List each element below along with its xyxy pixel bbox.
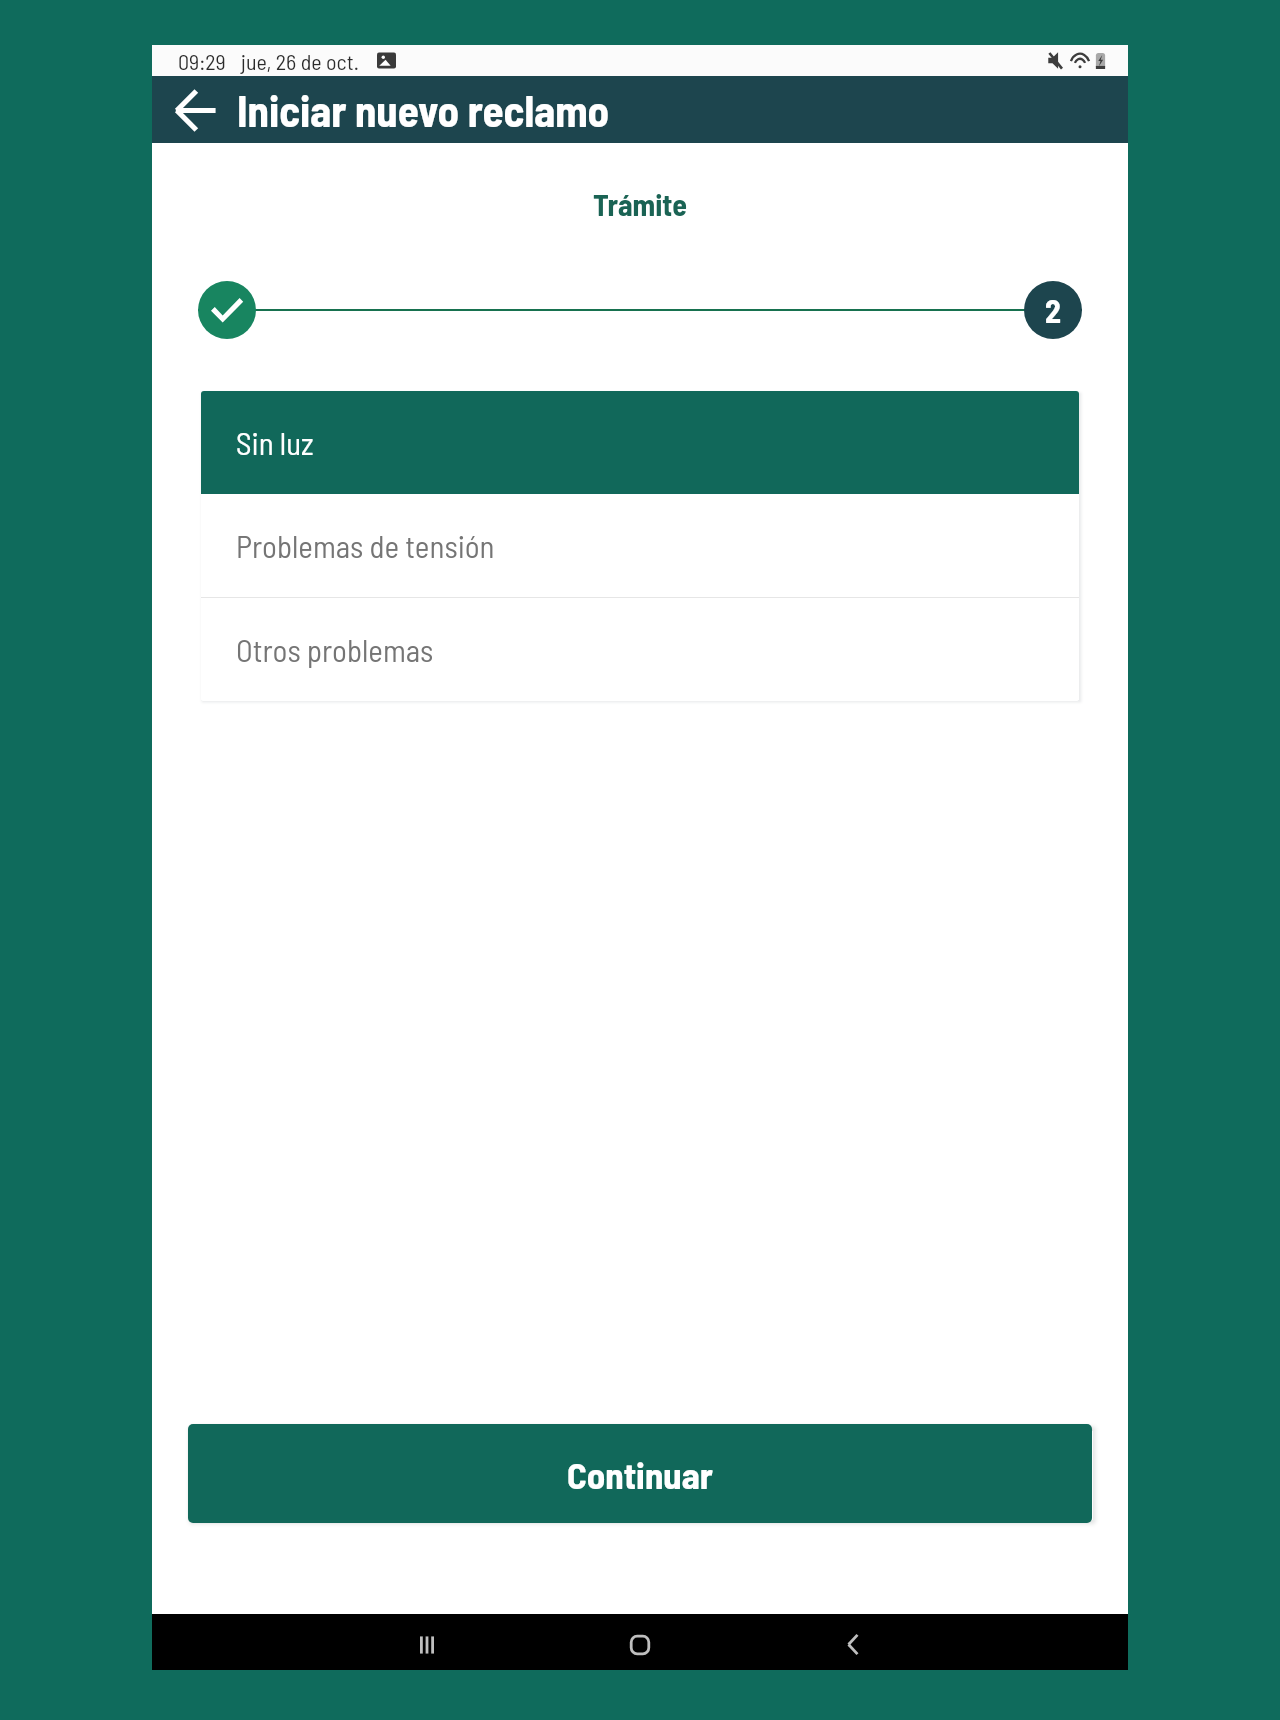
staticText: Iniciar nuevo reclamo xyxy=(237,84,610,136)
button[interactable]: Back xyxy=(803,1614,903,1670)
staticText: 09:29 xyxy=(178,48,226,74)
staticText: 2 xyxy=(1045,291,1061,329)
button[interactable]: Sin luz xyxy=(201,391,1079,494)
button[interactable]: Problemas de tensión xyxy=(201,494,1079,597)
staticText: Otros problemas xyxy=(236,631,434,668)
staticText: Trámite xyxy=(593,186,687,222)
staticText: jue, 26 de oct. xyxy=(241,48,359,74)
button[interactable]: Back xyxy=(164,79,226,141)
button[interactable]: Otros problemas xyxy=(201,598,1079,701)
staticText: Continuar xyxy=(567,1452,713,1496)
button[interactable]: Continuar xyxy=(188,1424,1092,1523)
button[interactable]: Home xyxy=(590,1614,690,1670)
staticText: Problemas de tensión xyxy=(236,527,495,564)
button[interactable]: Recent apps xyxy=(377,1614,477,1670)
button[interactable]: Step 2 xyxy=(1024,281,1082,339)
button[interactable]: Step 1 completed xyxy=(198,281,256,339)
staticText: Sin luz xyxy=(236,424,314,461)
